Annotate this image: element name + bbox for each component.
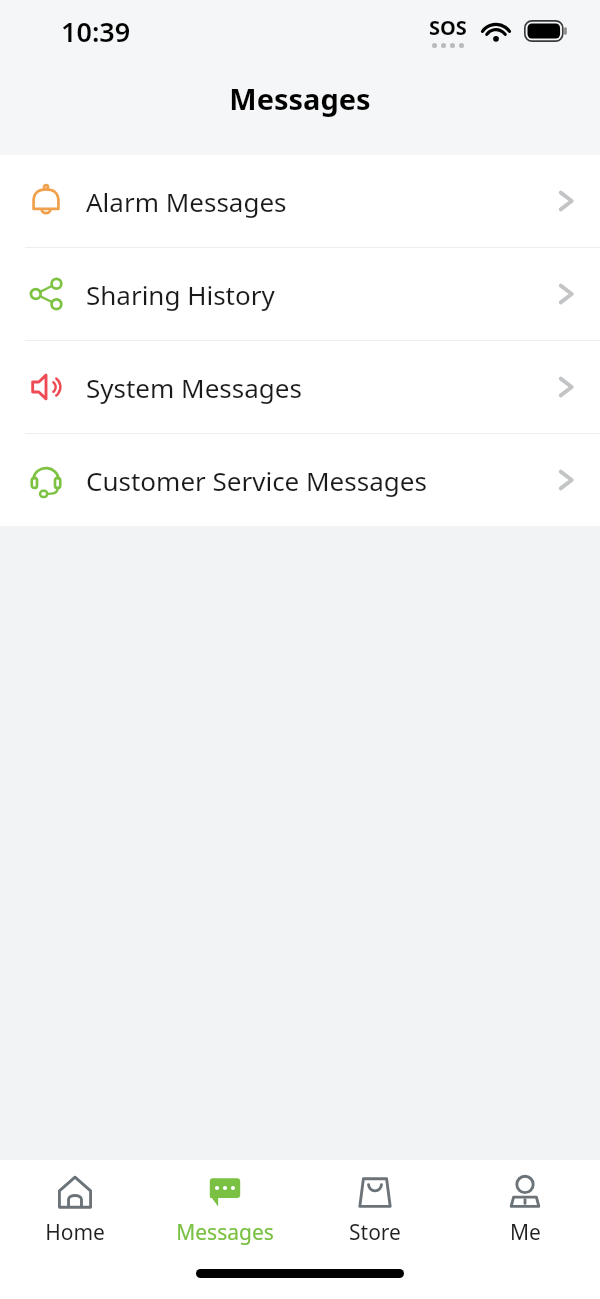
staticText: Store	[349, 1218, 401, 1247]
staticText: Sharing History	[86, 277, 554, 312]
button[interactable]: Messages	[150, 1166, 300, 1253]
staticText: 10:39	[61, 13, 131, 50]
staticText: System Messages	[86, 370, 554, 405]
staticText: Customer Service Messages	[86, 463, 554, 498]
button[interactable]: Store	[300, 1166, 450, 1253]
button[interactable]: Home	[0, 1166, 150, 1253]
staticText: Messages	[176, 1218, 274, 1247]
staticText: Alarm Messages	[86, 184, 554, 219]
staticText: Messages	[229, 79, 371, 118]
button[interactable]: System Messages	[0, 341, 600, 433]
staticText: Me	[510, 1218, 541, 1247]
button[interactable]: Me	[450, 1166, 600, 1253]
button[interactable]: Alarm Messages	[0, 155, 600, 247]
button[interactable]: Customer Service Messages	[0, 434, 600, 526]
staticText: Home	[45, 1218, 105, 1247]
staticText: SOS	[429, 14, 467, 41]
button[interactable]: Sharing History	[0, 248, 600, 340]
